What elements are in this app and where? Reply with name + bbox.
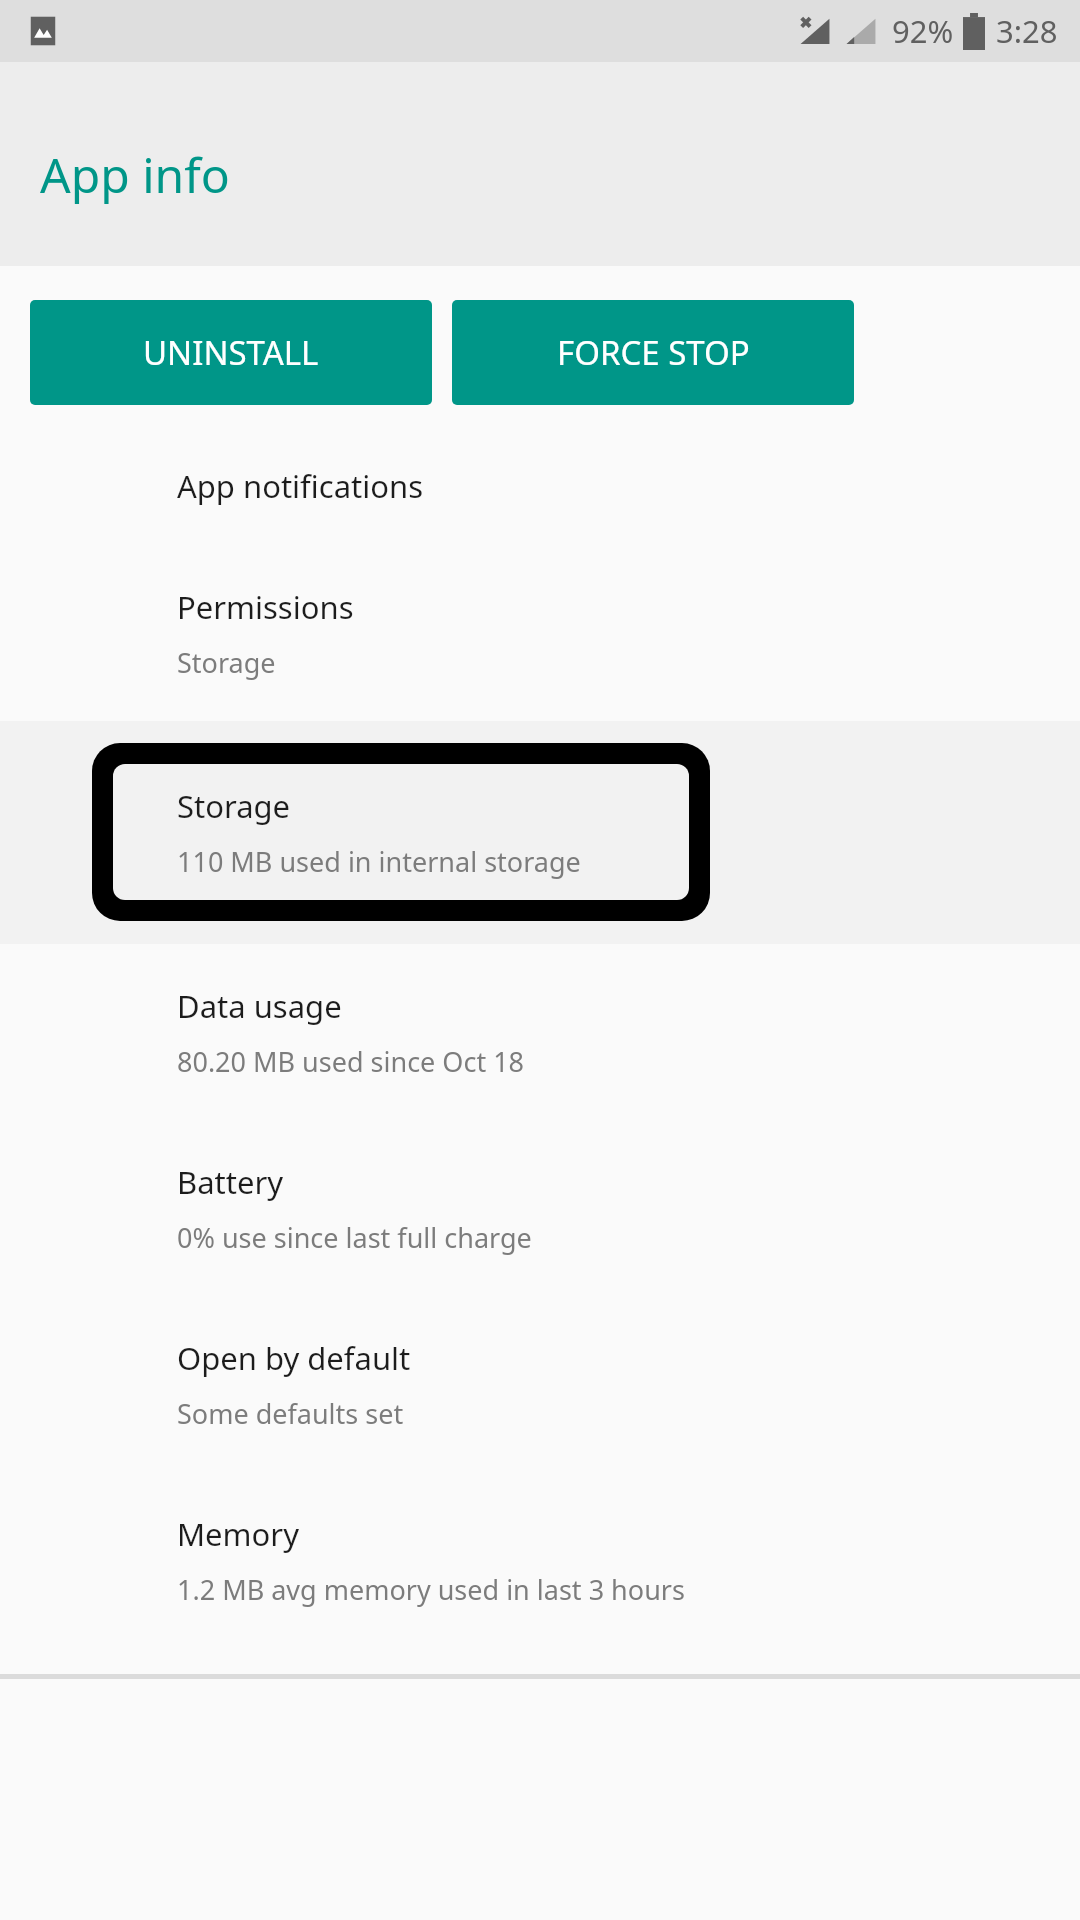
staticText: Some defaults set (177, 1395, 404, 1432)
button[interactable]: Permissions (0, 545, 1080, 721)
staticText: 92% (892, 10, 954, 52)
staticText: 3:28 (996, 10, 1058, 52)
button[interactable]: App notifications (0, 427, 1080, 545)
staticText: Storage (177, 785, 291, 827)
staticText: 1.2 MB avg memory used in last 3 hours (177, 1571, 685, 1608)
button[interactable]: Open by default (0, 1296, 1080, 1472)
staticText: 80.20 MB used since Oct 18 (177, 1043, 525, 1080)
button[interactable]: FORCE STOP (452, 300, 854, 405)
staticText: FORCE STOP (557, 330, 750, 375)
staticText: Permissions (177, 586, 354, 628)
staticText: App info (40, 142, 230, 207)
staticText: 110 MB used in internal storage (177, 843, 581, 880)
button[interactable]: UNINSTALL (30, 300, 432, 405)
button[interactable]: Memory (0, 1472, 1080, 1648)
staticText: Data usage (177, 985, 342, 1027)
staticText: Memory (177, 1513, 299, 1555)
button[interactable]: Battery (0, 1120, 1080, 1296)
staticText: Open by default (177, 1337, 411, 1379)
staticText: UNINSTALL (143, 330, 319, 375)
button[interactable]: Data usage (0, 944, 1080, 1120)
staticText: App notifications (177, 465, 423, 507)
staticText: Storage (177, 644, 276, 681)
staticText: Battery (177, 1161, 284, 1203)
other: Screenshot captured (26, 14, 60, 48)
staticText: 0% use since last full charge (177, 1219, 532, 1256)
button[interactable]: Storage (113, 764, 689, 900)
